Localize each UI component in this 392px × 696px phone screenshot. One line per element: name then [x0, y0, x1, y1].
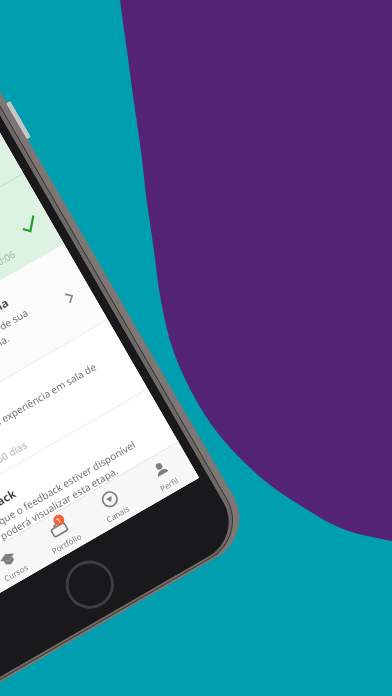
button[interactable]: Feedback da experiência em sala	[0, 244, 107, 467]
staticText: você poderá visualizar esta etapa.	[0, 464, 120, 590]
staticText: Saiba o que os alunos acharam de sua	[0, 305, 30, 432]
staticText: Aguardando feedback	[0, 486, 19, 564]
staticText: Feedback da experiência em sala	[0, 295, 11, 417]
button[interactable]: Perfil	[127, 441, 199, 507]
staticText: didática e do conteúdo da aula.	[0, 331, 12, 443]
button[interactable]: Portfólio	[25, 500, 97, 566]
staticText: Perfil	[158, 474, 180, 494]
button[interactable]: Aguardando feedback	[0, 389, 178, 590]
staticText: Cursos	[2, 561, 30, 584]
staticText: Acompanhe aqui toda a sua experiência em…	[0, 360, 98, 502]
staticText: Canais	[104, 503, 131, 525]
staticText: Disponível por mais 60 dias	[0, 438, 29, 531]
staticText: Portfólio	[49, 530, 84, 556]
staticText: 1	[54, 515, 64, 526]
button[interactable]: Acompanhe aqui toda a sua experiência em…	[0, 320, 147, 536]
staticText: Assim que o feedback estiver disponível	[0, 437, 138, 578]
button[interactable]: Canais	[76, 471, 148, 537]
staticText: 20:06	[0, 248, 17, 383]
button[interactable]: Cursos	[0, 530, 46, 596]
